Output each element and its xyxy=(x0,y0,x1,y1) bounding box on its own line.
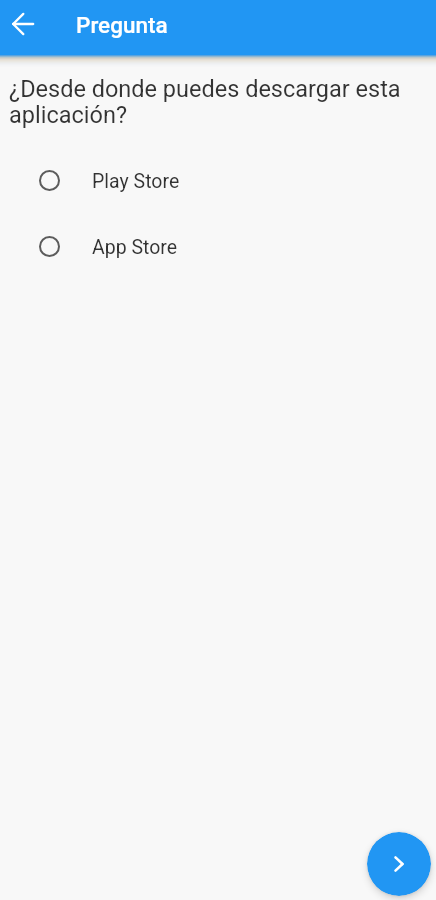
button[interactable]: Next xyxy=(367,832,431,896)
staticText: Pregunta xyxy=(76,12,168,38)
staticText: App Store xyxy=(92,236,178,259)
button[interactable]: Back xyxy=(0,2,46,48)
staticText: Play Store xyxy=(92,170,180,193)
button[interactable]: App Store xyxy=(0,220,436,273)
staticText: ¿Desde donde puedes descargar esta aplic… xyxy=(9,75,414,129)
button[interactable]: Play Store xyxy=(0,154,436,207)
